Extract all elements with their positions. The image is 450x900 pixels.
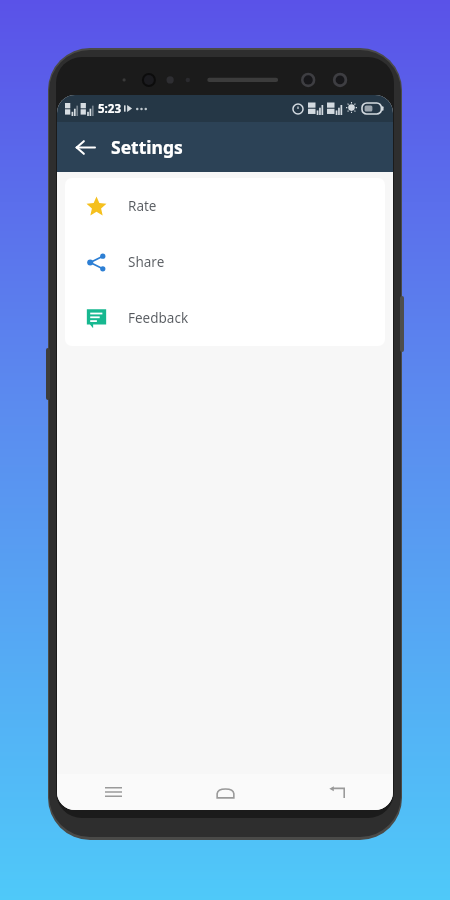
staticText: Feedback	[128, 309, 189, 327]
button[interactable]: Recents	[57, 774, 169, 810]
staticText: 5:23	[98, 101, 121, 117]
staticText: Share	[128, 253, 165, 271]
button[interactable]: Feedback	[65, 290, 385, 346]
button[interactable]: Back	[281, 774, 393, 810]
staticText: Rate	[128, 197, 157, 215]
button[interactable]: Rate	[65, 178, 385, 234]
button[interactable]: Share	[65, 234, 385, 290]
staticText: Settings	[111, 135, 183, 159]
button[interactable]: Home	[169, 774, 281, 810]
button[interactable]: Back	[65, 127, 105, 167]
